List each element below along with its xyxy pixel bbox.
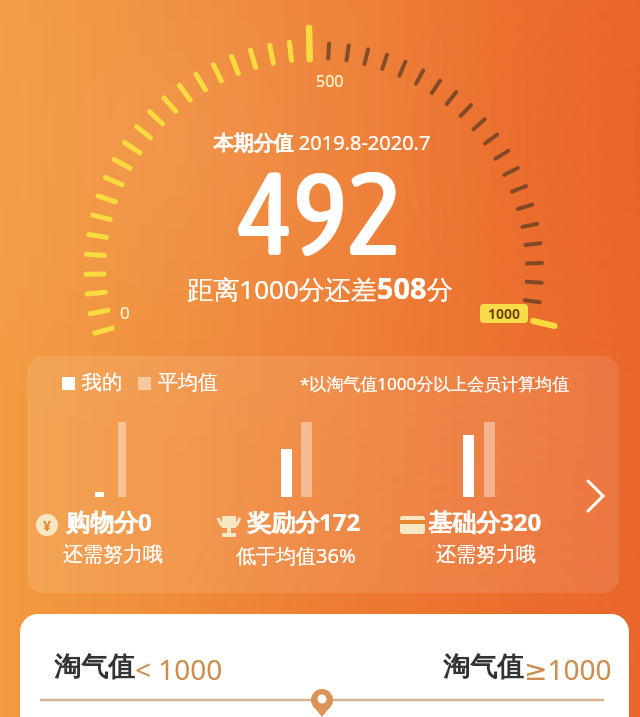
staticText: 500 bbox=[316, 70, 344, 92]
staticText: 低于均值36% bbox=[236, 542, 356, 569]
button[interactable]: 淘气值 bbox=[54, 650, 223, 688]
staticText: 还需努力哦 bbox=[63, 542, 163, 567]
staticText: 1000 bbox=[488, 304, 521, 323]
staticText: ¥ bbox=[43, 516, 52, 535]
staticText: 距离1000分还差508分 bbox=[0, 268, 640, 307]
staticText: 还需努力哦 bbox=[436, 542, 536, 567]
staticText: < 1000 bbox=[135, 650, 223, 688]
staticText: 基础分320 bbox=[428, 505, 542, 538]
button[interactable]: 淘气值 bbox=[443, 650, 612, 688]
staticText: 购物分0 bbox=[66, 505, 152, 538]
staticText: ≥1000 bbox=[524, 650, 612, 688]
staticText: 淘气值 bbox=[54, 650, 135, 684]
staticText: 0 bbox=[120, 301, 130, 324]
staticText: 奖励分172 bbox=[247, 505, 361, 538]
staticText: 我的 bbox=[82, 370, 122, 395]
button[interactable] bbox=[27, 356, 619, 593]
staticText: 本期分值 2019.8-2020.7 bbox=[2, 129, 640, 156]
staticText: 平均值 bbox=[158, 370, 218, 395]
staticText: 淘气值 bbox=[443, 650, 524, 684]
staticText: *以淘气值1000分以上会员计算均值 bbox=[300, 372, 570, 395]
staticText: 492 bbox=[0, 147, 640, 280]
